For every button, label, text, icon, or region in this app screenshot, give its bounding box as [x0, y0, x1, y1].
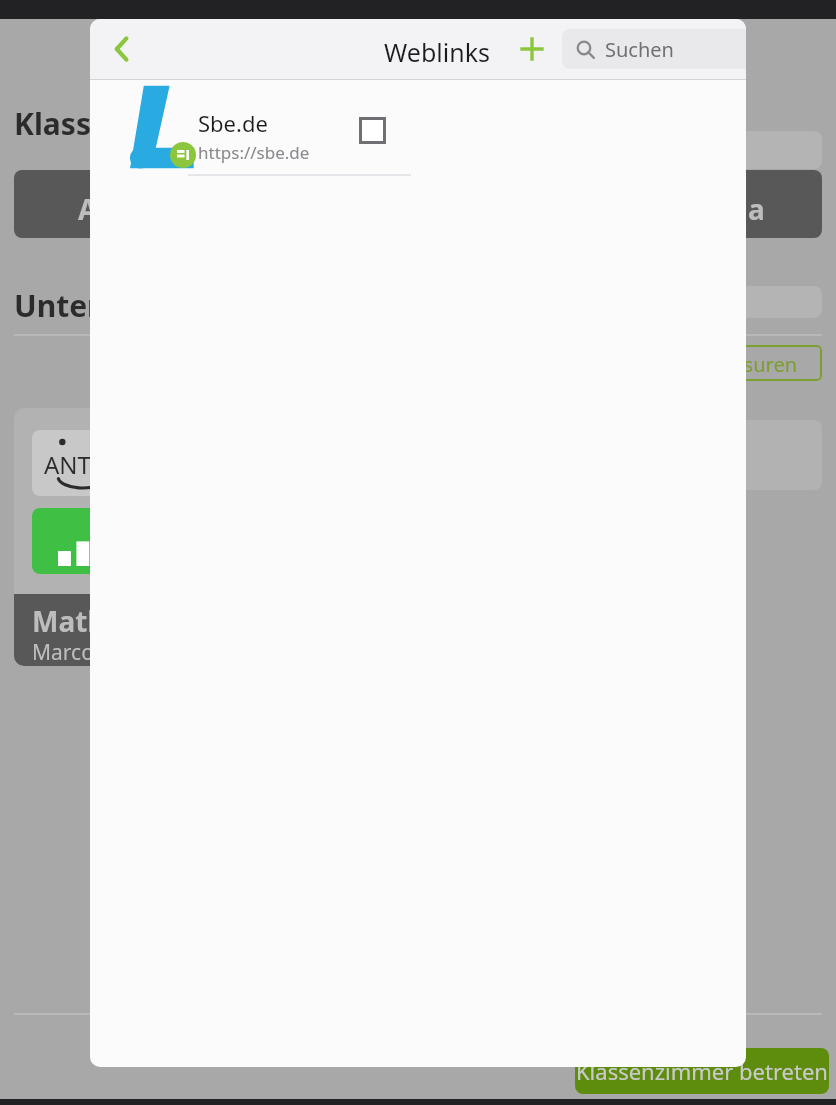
staticText: Suchen [605, 36, 674, 63]
button[interactable]: Klassenzimmer betreten [575, 1048, 829, 1094]
staticText: Math [32, 602, 106, 640]
button[interactable]: Auswählen [352, 110, 392, 150]
button[interactable]: Zurück [94, 19, 150, 79]
staticText: Weblinks [372, 35, 502, 69]
staticText: Unterrichtsmaterial [14, 285, 314, 326]
staticText: Marco B [32, 638, 113, 666]
staticText: ANTON [44, 448, 128, 481]
staticText: Sbe.de [198, 108, 268, 138]
button[interactable]: Ad-Hoc [14, 170, 822, 238]
button[interactable]: ANTON [14, 408, 194, 666]
button[interactable]: ausuren [718, 345, 822, 381]
staticText: ausuren [720, 351, 798, 378]
staticText: https://sbe.de [198, 141, 310, 164]
staticText: Klassenarbeiten [14, 103, 257, 144]
button[interactable]: Sbe.de [90, 80, 746, 180]
button[interactable]: Suchen [562, 29, 746, 69]
staticText: Klassenzimmer betreten [576, 1056, 828, 1086]
button[interactable]: Hinzufügen [510, 27, 554, 71]
staticText: Ad-Hoc [78, 190, 178, 228]
staticText: a [748, 190, 765, 228]
